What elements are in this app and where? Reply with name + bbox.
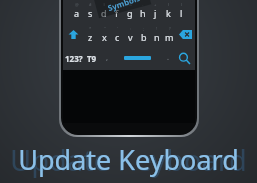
button[interactable]: ! (150, 22, 163, 46)
staticText: * (89, 26, 92, 31)
staticText: ; (143, 26, 145, 31)
button[interactable]: ? (163, 22, 176, 46)
button[interactable]: Shift (63, 22, 83, 46)
button[interactable]: - (136, 0, 149, 22)
button[interactable]: : (124, 22, 137, 46)
button[interactable]: # (84, 0, 97, 22)
button[interactable]: T9 (84, 46, 100, 70)
staticText: b (141, 31, 147, 43)
staticText: : (130, 26, 132, 31)
staticText: g (127, 7, 133, 19)
staticText: k (166, 7, 171, 19)
staticText: @ (75, 2, 79, 7)
button[interactable]: 123? (63, 46, 84, 70)
staticText: Update Keyboard (18, 141, 239, 178)
button[interactable]: ' (111, 22, 124, 46)
staticText: d (101, 7, 107, 19)
staticText: , (106, 53, 108, 63)
button[interactable]: ( (162, 0, 175, 22)
staticText: ( (168, 2, 170, 7)
staticText: c (115, 31, 120, 43)
staticText: - (142, 2, 144, 7)
staticText: 123? (65, 53, 83, 64)
staticText: " (104, 26, 106, 31)
staticText: m (165, 31, 174, 43)
staticText: v (128, 31, 133, 43)
button[interactable]: _ (110, 0, 123, 22)
button[interactable]: Backspace (176, 22, 195, 46)
staticText: z (88, 31, 93, 43)
button[interactable]: + (149, 0, 162, 22)
staticText: s (88, 7, 93, 19)
button[interactable]: @ (70, 0, 84, 22)
staticText: $ (103, 2, 106, 7)
button[interactable]: Search (174, 46, 195, 70)
button[interactable]: Space (113, 46, 161, 70)
staticText: l (180, 7, 183, 19)
button[interactable]: , (100, 46, 113, 70)
button[interactable]: ) (175, 0, 188, 22)
staticText: ? (169, 26, 171, 31)
staticText: j (154, 7, 157, 19)
staticText: ' (117, 26, 118, 31)
button[interactable]: ; (137, 22, 150, 46)
staticText: . (167, 53, 169, 63)
staticText: ! (156, 26, 158, 31)
button[interactable]: " (97, 22, 111, 46)
staticText: Symbols (106, 0, 142, 13)
staticText: f (115, 7, 119, 19)
staticText: Update Keyboard (10, 140, 247, 179)
staticText: _ (116, 2, 118, 7)
staticText: h (140, 7, 146, 19)
staticText: a (74, 7, 80, 19)
staticText: + (154, 2, 157, 7)
staticText: n (154, 31, 160, 43)
staticText: T9 (87, 53, 97, 64)
button[interactable]: $ (97, 0, 110, 22)
staticText: x (102, 31, 107, 43)
staticText: # (89, 2, 92, 7)
staticText: & (129, 2, 132, 7)
staticText: ) (181, 2, 183, 7)
button[interactable]: & (123, 0, 136, 22)
button[interactable]: * (83, 22, 97, 46)
